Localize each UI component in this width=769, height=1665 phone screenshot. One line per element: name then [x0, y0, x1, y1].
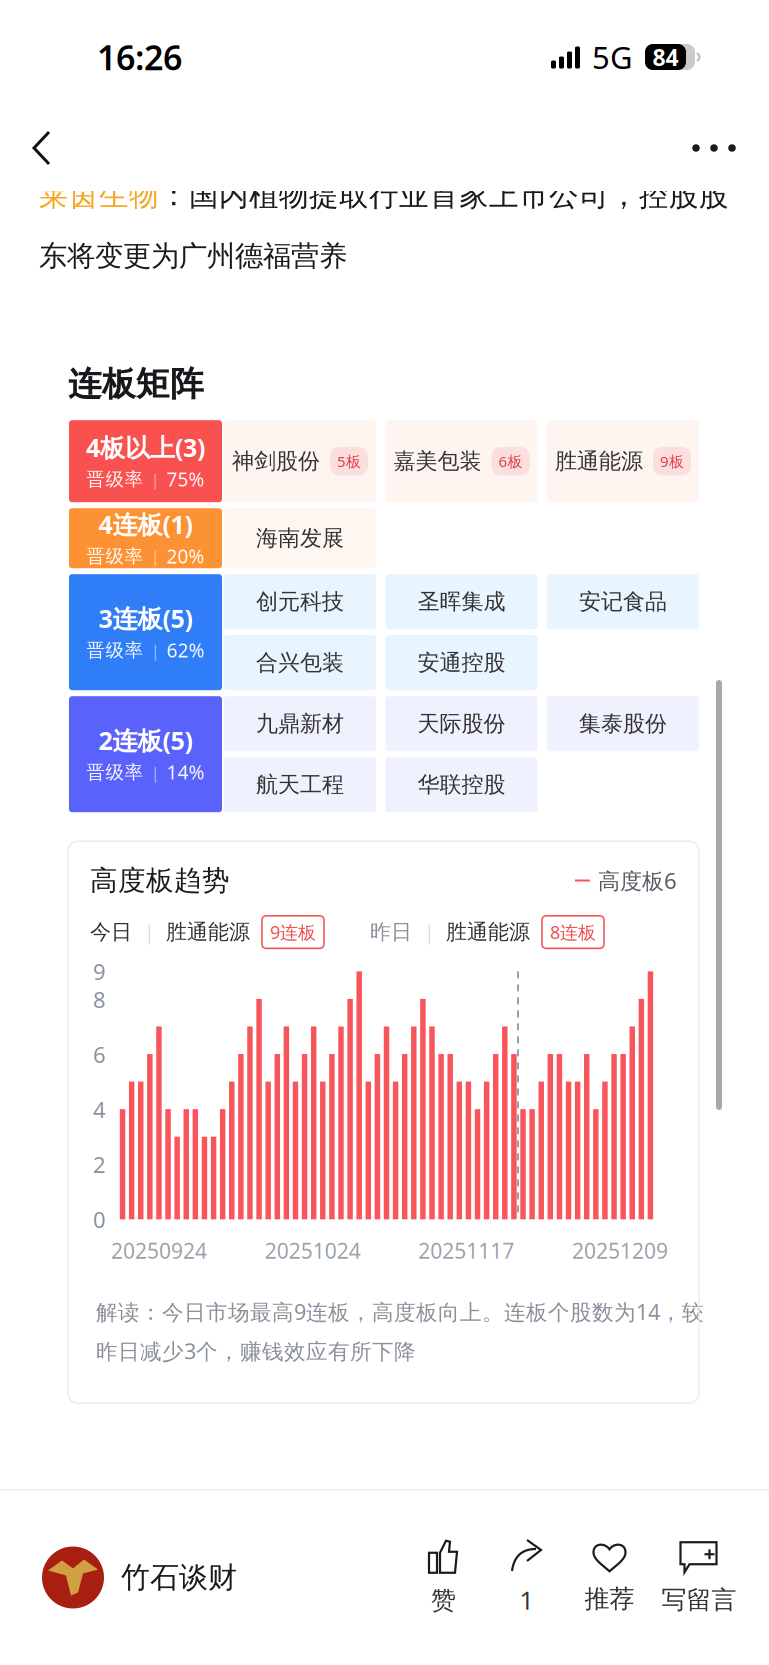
staticText: 9连板 — [270, 920, 316, 944]
staticText: 莱茵生物 — [39, 177, 159, 214]
staticText: 1 — [519, 1583, 533, 1617]
staticText: 75% — [166, 466, 204, 492]
staticText: 今日 — [90, 919, 132, 945]
staticText: | — [150, 761, 159, 784]
staticText: 84 — [652, 41, 678, 73]
button[interactable]: More — [677, 112, 751, 184]
button[interactable]: 创元科技 — [224, 574, 376, 629]
staticText: 8连板 — [550, 920, 596, 944]
staticText: 2 — [93, 1149, 106, 1179]
staticText: 9板 — [660, 451, 684, 471]
staticText: 安通控股 — [417, 649, 505, 676]
staticText: 20250924 — [111, 1236, 207, 1265]
staticText: 昨日 — [370, 919, 412, 945]
button[interactable]: 写留言 — [651, 1526, 747, 1628]
button[interactable]: 嘉美包装 — [385, 420, 537, 502]
staticText: 昨日减少3个，赚钱效应有所下降 — [96, 1336, 416, 1365]
staticText: | — [150, 545, 159, 568]
staticText: 写留言 — [661, 1584, 736, 1616]
button[interactable]: 航天工程 — [224, 757, 376, 812]
staticText: 圣晖集成 — [417, 588, 505, 615]
staticText: 晋级率 — [86, 761, 143, 784]
staticText: 高度板趋势 — [90, 863, 230, 898]
staticText: 9 — [93, 956, 106, 986]
staticText: ：国内植物提取行业首家上市公司，控股股 — [159, 177, 729, 214]
staticText: 晋级率 — [86, 545, 143, 568]
staticText: 14% — [166, 759, 204, 785]
staticText: 胜通能源 — [555, 447, 643, 475]
button[interactable]: 1 — [485, 1526, 568, 1628]
button[interactable]: Back — [9, 112, 75, 184]
staticText: 4 — [93, 1094, 106, 1124]
staticText: 海南发展 — [256, 524, 344, 552]
staticText: 晋级率 — [86, 639, 143, 662]
staticText: 2连板(5) — [98, 723, 192, 757]
button[interactable]: 竹石谈财 — [0, 1490, 237, 1664]
staticText: 4板以上(3) — [86, 430, 205, 464]
staticText: 20251117 — [418, 1236, 514, 1265]
staticText: 赞 — [431, 1585, 456, 1616]
staticText: 胜通能源 — [166, 919, 250, 945]
staticText: 16:26 — [97, 34, 182, 80]
button[interactable]: 海南发展 — [224, 508, 376, 568]
staticText: 20251024 — [265, 1236, 361, 1265]
staticText: 5板 — [337, 451, 361, 471]
button[interactable]: 圣晖集成 — [385, 574, 537, 629]
staticText: 推荐 — [584, 1583, 634, 1615]
button[interactable]: 华联控股 — [385, 757, 537, 812]
staticText: | — [424, 919, 434, 945]
staticText: 胜通能源 — [446, 919, 530, 945]
staticText: 3连板(5) — [98, 601, 192, 635]
staticText: 高度板6 — [598, 865, 677, 895]
staticText: 九鼎新材 — [256, 710, 344, 737]
staticText: 东将变更为广州德福营养 — [39, 238, 347, 274]
staticText: 华联控股 — [417, 771, 505, 798]
staticText: 8 — [93, 984, 106, 1014]
staticText: 天际股份 — [417, 710, 505, 737]
button[interactable]: 九鼎新材 — [224, 696, 376, 751]
staticText: 集泰股份 — [579, 710, 667, 737]
button[interactable]: 集泰股份 — [547, 696, 699, 751]
staticText: 竹石谈财 — [121, 1559, 237, 1596]
staticText: 晋级率 — [86, 468, 143, 491]
button[interactable]: 胜通能源 — [547, 420, 699, 502]
button[interactable]: 合兴包装 — [224, 635, 376, 690]
staticText: 6 — [93, 1039, 106, 1069]
staticText: 神剑股份 — [232, 447, 320, 475]
staticText: 5G — [592, 36, 633, 78]
button[interactable]: 安通控股 — [385, 635, 537, 690]
staticText: 62% — [166, 637, 204, 663]
staticText: 安记食品 — [579, 588, 667, 615]
button[interactable]: 天际股份 — [385, 696, 537, 751]
staticText: 20% — [166, 543, 204, 569]
staticText: | — [150, 639, 159, 662]
staticText: 创元科技 — [256, 588, 344, 615]
staticText: 6板 — [498, 451, 522, 471]
staticText: 20251209 — [572, 1236, 668, 1265]
button[interactable]: 赞 — [402, 1526, 485, 1628]
staticText: 4连板(1) — [98, 507, 192, 541]
staticText: | — [144, 919, 154, 945]
staticText: 0 — [93, 1204, 106, 1234]
button[interactable]: 推荐 — [568, 1526, 651, 1628]
staticText: 连板矩阵 — [68, 363, 204, 405]
staticText: | — [150, 468, 159, 491]
staticText: 航天工程 — [256, 771, 344, 798]
button[interactable]: 神剑股份 — [224, 420, 376, 502]
button[interactable]: 安记食品 — [547, 574, 699, 629]
staticText: 解读：今日市场最高9连板，高度板向上。连板个股数为14，较 — [96, 1297, 704, 1326]
staticText: 合兴包装 — [256, 649, 344, 676]
staticText: 嘉美包装 — [393, 447, 481, 475]
